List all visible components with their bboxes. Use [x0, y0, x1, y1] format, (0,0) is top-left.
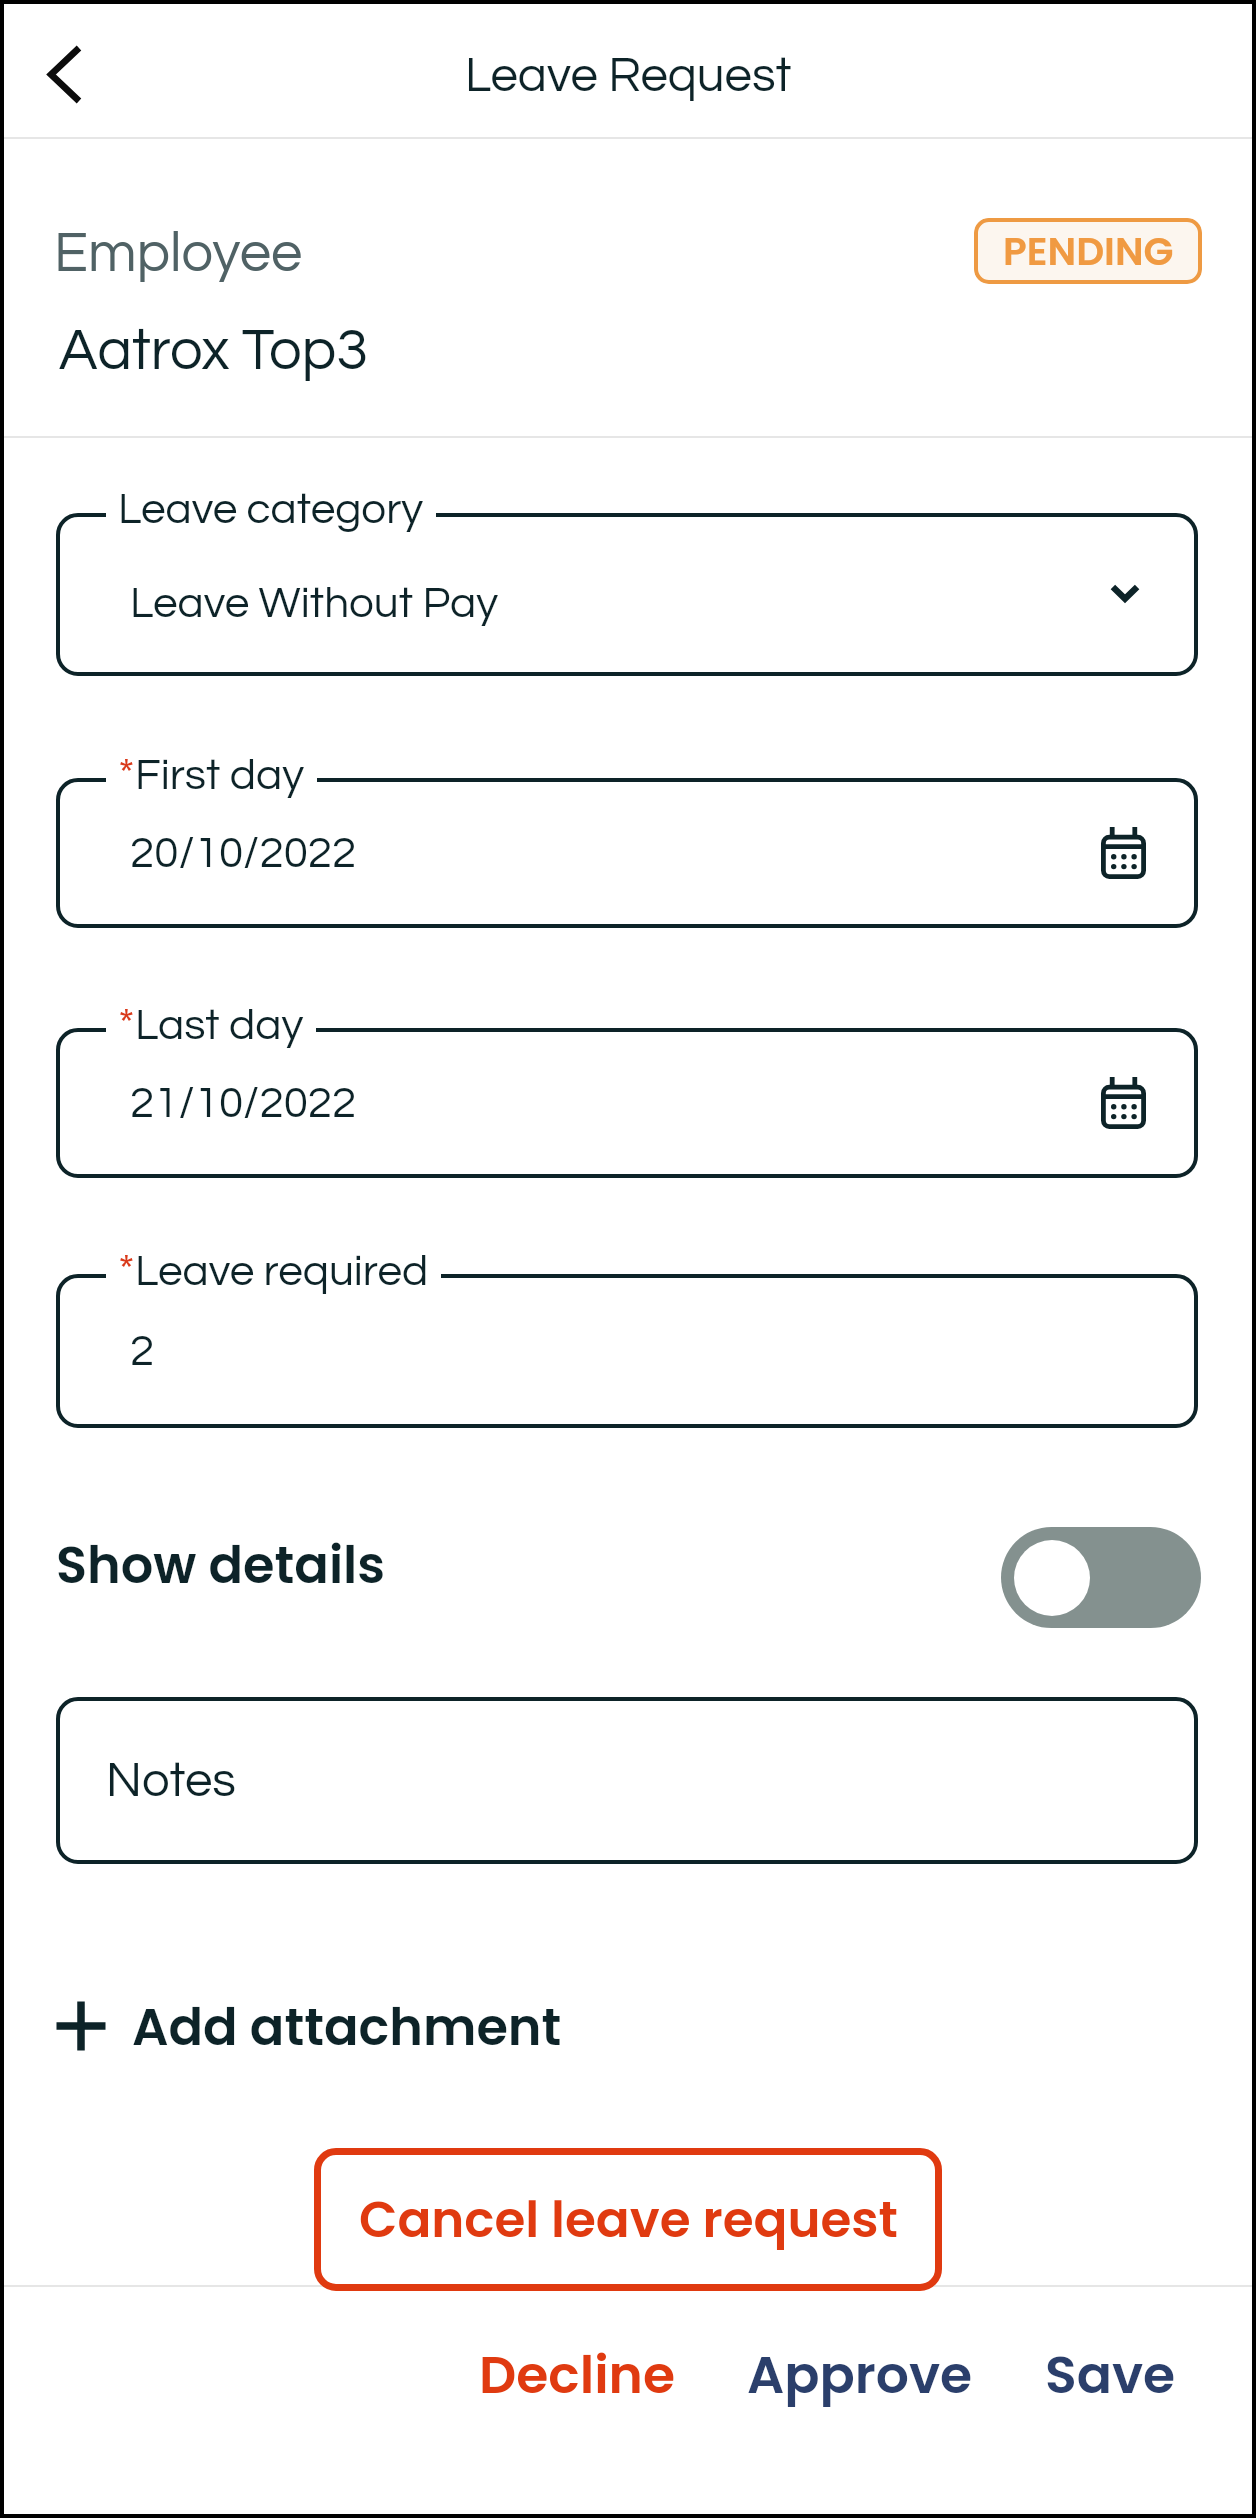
button[interactable] [56, 1274, 1198, 1428]
staticText: Show details [56, 1529, 386, 1600]
button[interactable]: Add attachment [56, 1986, 562, 2066]
button[interactable]: Cancel leave request [314, 2148, 942, 2291]
button[interactable]: Show details toggle [1001, 1527, 1201, 1628]
button[interactable]: Notes [56, 1697, 1198, 1864]
staticText: Add attachment [132, 1991, 562, 2062]
button[interactable]: Decline [469, 2324, 686, 2425]
staticText: PENDING [1003, 224, 1174, 279]
staticText: 2 [130, 1329, 155, 1374]
staticText: 21/10/2022 [130, 1081, 357, 1126]
staticText: Leave required [135, 1249, 429, 1294]
staticText: Cancel leave request [359, 2185, 898, 2255]
staticText: * [118, 1002, 135, 1048]
staticText: Last day [135, 1003, 304, 1048]
staticText: Employee [54, 225, 303, 283]
staticText: Approve [747, 2338, 973, 2411]
staticText: 20/10/2022 [130, 831, 357, 876]
button[interactable]: PENDING [974, 218, 1202, 284]
staticText: Save [1045, 2338, 1176, 2411]
button[interactable]: Save [1035, 2324, 1186, 2425]
staticText: * [118, 1248, 135, 1294]
button[interactable]: Approve [737, 2324, 983, 2425]
staticText: * [118, 752, 135, 798]
staticText: First day [135, 753, 305, 798]
staticText: Notes [106, 1756, 236, 1806]
button[interactable]: Back [22, 34, 106, 114]
staticText: Leave category [118, 487, 424, 532]
staticText: Decline [479, 2338, 676, 2411]
staticText: Aatrox Top3 [59, 321, 369, 381]
button[interactable] [56, 1028, 1198, 1178]
button[interactable] [56, 513, 1198, 676]
staticText: Leave Request [465, 51, 792, 101]
button[interactable] [56, 778, 1198, 928]
staticText: Leave Without Pay [130, 581, 499, 626]
